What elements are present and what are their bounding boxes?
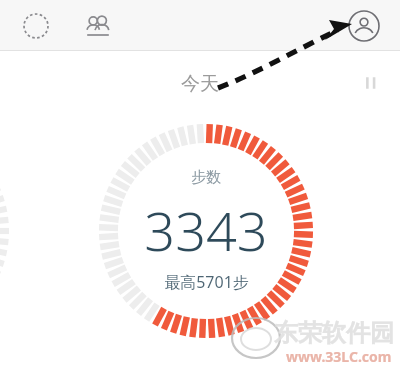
staticText: 东荣软件园 xyxy=(274,318,394,348)
staticText: 最高5701步 xyxy=(164,271,249,293)
button[interactable]: Pause xyxy=(360,72,382,94)
staticText: 步数 xyxy=(191,168,221,187)
staticText: www.33LC.com xyxy=(286,347,392,366)
button[interactable]: Activity ring xyxy=(16,6,56,46)
button[interactable]: Profile xyxy=(342,4,386,48)
staticText: 3343 xyxy=(144,193,268,267)
button[interactable]: Friends xyxy=(76,4,120,48)
staticText: 今天 xyxy=(181,72,219,96)
